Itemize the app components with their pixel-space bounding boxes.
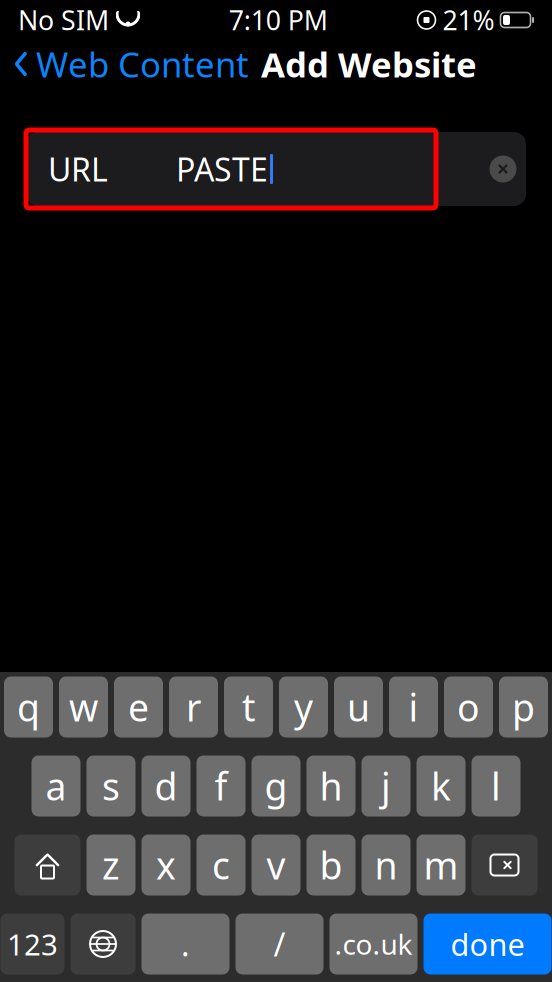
staticText: i	[408, 682, 418, 732]
button[interactable]: f	[196, 755, 245, 816]
staticText: 123	[7, 924, 58, 963]
button[interactable]: s	[86, 755, 135, 816]
button[interactable]: k	[416, 755, 465, 816]
button[interactable]: l	[471, 755, 520, 816]
staticText: m	[423, 840, 458, 890]
button[interactable]: i	[389, 676, 438, 737]
staticText: s	[102, 761, 120, 811]
button[interactable]: q	[4, 676, 53, 737]
staticText: n	[374, 840, 397, 890]
button[interactable]: w	[59, 676, 108, 737]
staticText: v	[266, 840, 285, 890]
staticText: k	[431, 761, 451, 811]
staticText: No SIM	[18, 2, 109, 38]
staticText: 7:10 PM	[229, 2, 328, 38]
staticText: p	[512, 682, 535, 732]
staticText: c	[212, 840, 230, 890]
staticText: l	[491, 761, 501, 811]
button[interactable]: b	[306, 834, 355, 895]
button[interactable]: v	[251, 834, 300, 895]
staticText: 21%	[442, 2, 494, 38]
staticText: b	[319, 840, 342, 890]
button[interactable]: h	[306, 755, 355, 816]
button[interactable]: .	[141, 913, 229, 974]
button[interactable]: done	[423, 913, 551, 974]
button[interactable]: n	[361, 834, 410, 895]
staticText: Web Content	[36, 41, 249, 87]
button[interactable]: g	[251, 755, 300, 816]
button[interactable]: x	[141, 834, 190, 895]
staticText: g	[264, 761, 287, 811]
staticText: f	[214, 761, 227, 811]
button[interactable]: Shift	[14, 834, 80, 895]
staticText: y	[294, 682, 313, 732]
staticText: u	[347, 682, 370, 732]
staticText: a	[45, 761, 66, 811]
button[interactable]: d	[141, 755, 190, 816]
button[interactable]: /	[235, 913, 323, 974]
button[interactable]: c	[196, 834, 245, 895]
staticText: j	[381, 761, 391, 811]
staticText: w	[69, 682, 98, 732]
staticText: h	[319, 761, 342, 811]
button[interactable]: Next keyboard	[70, 913, 135, 974]
button[interactable]: Clear text	[480, 132, 526, 206]
staticText: .co.uk	[334, 925, 412, 963]
button[interactable]: Web Content	[0, 35, 249, 93]
staticText: /	[273, 923, 285, 965]
button[interactable]: r	[169, 676, 218, 737]
button[interactable]: z	[86, 834, 135, 895]
button[interactable]: .co.uk	[329, 913, 417, 974]
button[interactable]: j	[361, 755, 410, 816]
staticText: Add Website	[261, 41, 477, 87]
button[interactable]: m	[416, 834, 465, 895]
button[interactable]: p	[499, 676, 548, 737]
staticText: z	[102, 840, 120, 890]
staticText: q	[17, 682, 40, 732]
staticText: done	[450, 924, 524, 964]
button[interactable]: y	[279, 676, 328, 737]
staticText: o	[457, 682, 480, 732]
staticText: URL	[48, 148, 108, 190]
staticText: PASTE	[176, 148, 268, 190]
button[interactable]: o	[444, 676, 493, 737]
staticText: t	[242, 682, 255, 732]
button[interactable]: u	[334, 676, 383, 737]
button[interactable]: Delete	[471, 834, 537, 895]
staticText: .	[181, 923, 190, 965]
button[interactable]: 123	[0, 913, 64, 974]
button[interactable]: t	[224, 676, 273, 737]
button[interactable]: e	[114, 676, 163, 737]
staticText: e	[128, 682, 149, 732]
button[interactable]: a	[31, 755, 80, 816]
staticText: d	[154, 761, 177, 811]
staticText: r	[186, 682, 201, 732]
staticText: x	[156, 840, 176, 890]
